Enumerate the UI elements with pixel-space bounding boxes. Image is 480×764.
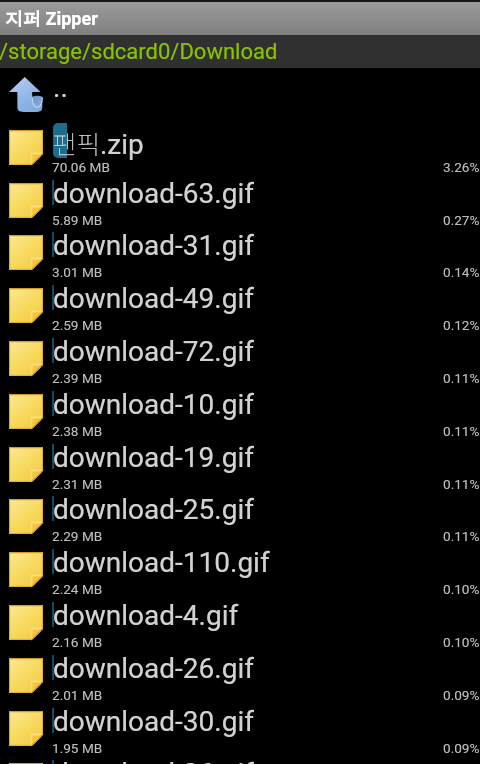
staticText: 2.29 MB [52,528,103,544]
staticText: 지퍼 Zipper [5,8,98,31]
staticText: 0.10% [443,634,480,650]
staticText: download-26.gif [53,652,254,685]
button[interactable]: download-4.gif [0,596,480,649]
staticText: 0.11% [443,528,480,544]
staticText: download-36.gif [53,757,254,764]
button[interactable]: /storage/sdcard0/Download [0,35,480,68]
staticText: 5.89 MB [52,212,103,228]
staticText: 2.16 MB [52,634,103,650]
staticText: 0.10% [443,581,480,597]
staticText: 2.31 MB [52,476,103,492]
button[interactable]: download-31.gif [0,226,480,279]
staticText: /storage/sdcard0/Download [0,39,278,65]
staticText: download-10.gif [53,388,254,421]
button[interactable]: download-36.gif [0,754,480,764]
button[interactable]: download-110.gif [0,543,480,596]
staticText: 3.26% [443,159,480,175]
staticText: 2.01 MB [52,687,103,703]
button[interactable]: download-19.gif [0,438,480,491]
staticText: 1.95 MB [52,740,103,756]
button[interactable]: Go up one level [0,68,480,121]
staticText: 2.59 MB [52,317,103,333]
button[interactable]: download-10.gif [0,385,480,438]
staticText: .. [53,71,68,104]
staticText: 0.09% [443,687,480,703]
button[interactable]: download-49.gif [0,279,480,332]
staticText: 0.11% [443,423,480,439]
staticText: 0.09% [443,740,480,756]
staticText: download-25.gif [53,493,254,526]
staticText: 3.01 MB [52,264,103,280]
staticText: download-31.gif [53,229,254,262]
staticText: download-19.gif [53,441,254,474]
staticText: download-30.gif [53,705,254,738]
staticText: 0.27% [443,212,480,228]
staticText: 2.39 MB [52,370,103,386]
staticText: download-4.gif [53,599,239,632]
staticText: download-72.gif [53,335,254,368]
staticText: download-63.gif [53,177,254,210]
button[interactable]: download-25.gif [0,490,480,543]
staticText: 0.12% [443,317,480,333]
staticText: download-110.gif [53,546,270,579]
staticText: 0.11% [443,476,480,492]
staticText: 2.24 MB [52,581,103,597]
button[interactable]: 지퍼 Zipper [0,0,480,35]
staticText: 2.38 MB [52,423,103,439]
staticText: 70.06 MB [52,159,110,175]
button[interactable]: download-30.gif [0,702,480,755]
staticText: 0.11% [443,370,480,386]
staticText: download-49.gif [53,282,254,315]
button[interactable]: download-72.gif [0,332,480,385]
button[interactable]: download-26.gif [0,649,480,702]
staticText: 0.14% [443,264,480,280]
button[interactable]: 팬픽.zip [0,121,480,174]
staticText: 팬픽.zip [53,124,144,161]
button[interactable]: download-63.gif [0,174,480,227]
